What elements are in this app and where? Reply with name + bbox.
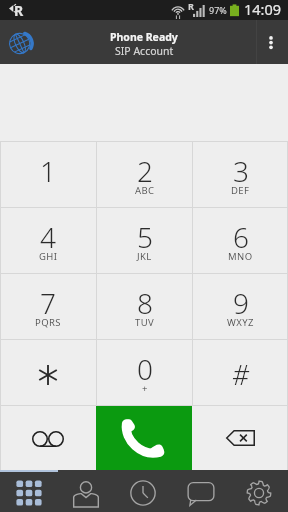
- button[interactable]: Call: [96, 406, 192, 470]
- staticText: ABC: [135, 184, 155, 197]
- staticText: JKL: [137, 250, 152, 263]
- button[interactable]: 3: [193, 142, 288, 207]
- staticText: R: [14, 1, 24, 20]
- staticText: 3: [233, 152, 249, 190]
- button[interactable]: Recents: [114, 470, 172, 512]
- staticText: 97%: [209, 4, 227, 16]
- button[interactable]: [0, 340, 96, 405]
- staticText: #: [232, 356, 250, 393]
- button[interactable]: 8: [97, 274, 192, 339]
- staticText: 14:09: [244, 0, 282, 19]
- staticText: 8: [137, 284, 153, 322]
- button[interactable]: Contacts: [57, 470, 114, 512]
- staticText: 4: [40, 218, 56, 256]
- button[interactable]: 0: [97, 340, 192, 405]
- staticText: 6: [233, 218, 249, 256]
- button[interactable]: #: [193, 340, 288, 405]
- staticText: DEF: [231, 184, 250, 197]
- staticText: 1: [40, 152, 56, 190]
- staticText: +: [142, 382, 148, 395]
- button[interactable]: 4: [0, 208, 96, 273]
- staticText: MNO: [228, 250, 253, 263]
- staticText: 0: [137, 350, 153, 388]
- button[interactable]: 5: [97, 208, 192, 273]
- staticText: Phone Ready: [110, 30, 178, 44]
- button[interactable]: Messages: [172, 470, 230, 512]
- staticText: 7: [40, 284, 56, 322]
- button[interactable]: Settings: [230, 470, 288, 512]
- button[interactable]: SIP account: [0, 20, 44, 64]
- button[interactable]: 6: [193, 208, 288, 273]
- button[interactable]: 7: [0, 274, 96, 339]
- staticText: 9: [233, 284, 249, 322]
- staticText: 2: [137, 152, 153, 190]
- button[interactable]: Dialpad: [0, 470, 57, 512]
- staticText: GHI: [39, 250, 58, 263]
- button[interactable]: 9: [193, 274, 288, 339]
- button[interactable]: 2: [97, 142, 192, 207]
- staticText: SIP Account: [115, 44, 174, 58]
- staticText: WXYZ: [227, 316, 254, 329]
- button[interactable]: Backspace: [192, 406, 288, 470]
- button[interactable]: Voicemail: [0, 406, 96, 470]
- staticText: R: [188, 0, 194, 12]
- staticText: 5: [137, 218, 153, 256]
- button[interactable]: 1: [0, 142, 96, 207]
- button[interactable]: More options: [256, 20, 288, 64]
- staticText: TUV: [135, 316, 155, 329]
- staticText: PQRS: [35, 316, 61, 329]
